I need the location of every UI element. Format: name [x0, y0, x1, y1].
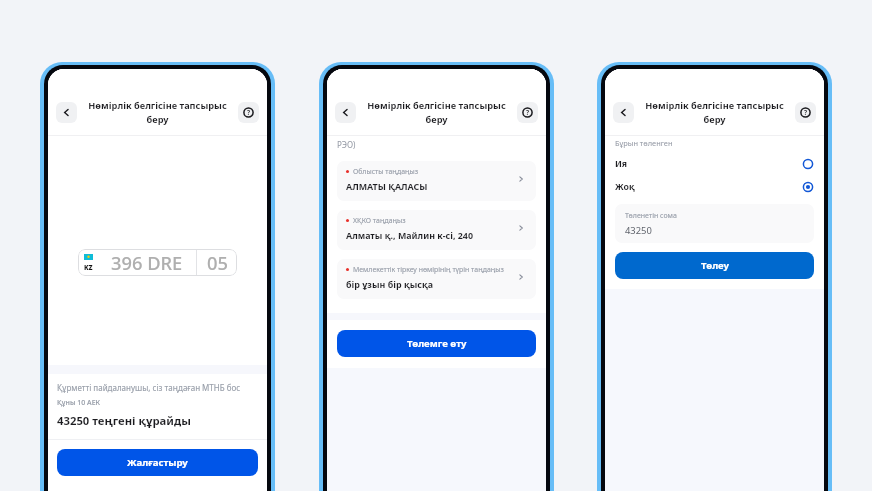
staticText: АЛМАТЫ ҚАЛАСЫ: [346, 180, 428, 192]
button[interactable]: Back: [335, 102, 356, 123]
staticText: Құны 10 АЕК: [57, 398, 101, 408]
staticText: KZ: [84, 263, 93, 272]
button[interactable]: Жоқ: [605, 176, 824, 198]
button[interactable]: Облысты таңдаңыз: [337, 161, 536, 201]
staticText: Құрметті пайдаланушы, сіз таңдаған МТНБ …: [57, 382, 241, 393]
staticText: Ия: [615, 158, 628, 170]
staticText: Төлеу: [701, 259, 729, 272]
staticText: Жоқ: [615, 181, 635, 193]
staticText: ?: [804, 108, 808, 117]
staticText: Нөмірлік белгісіне тапсырыс беру: [359, 99, 514, 126]
staticText: Нөмірлік белгісіне тапсырыс беру: [637, 99, 792, 126]
staticText: Төленетін сома: [625, 211, 677, 221]
staticText: ?: [247, 108, 251, 117]
staticText: Облысты таңдаңыз: [353, 167, 419, 176]
staticText: ХҚКО таңдаңыз: [353, 216, 406, 225]
button[interactable]: Төлемге өту: [337, 330, 536, 357]
button[interactable]: Help: [795, 102, 816, 123]
staticText: Төлемге өту: [407, 337, 467, 350]
staticText: ?: [526, 108, 530, 117]
staticText: 43250: [625, 224, 652, 237]
staticText: 43250 теңгені құрайды: [57, 413, 191, 428]
button[interactable]: Жалғастыру: [57, 449, 258, 476]
staticText: Мемлекеттік тіркеу нөмірінің түрін таңда…: [353, 265, 504, 274]
button[interactable]: Мемлекеттік тіркеу нөмірінің түрін таңда…: [337, 259, 536, 299]
staticText: Алматы қ., Майлин к-сі, 240: [346, 229, 474, 241]
staticText: Нөмірлік белгісіне тапсырыс беру: [80, 99, 235, 126]
button[interactable]: Back: [56, 102, 77, 123]
button[interactable]: Төлеу: [615, 252, 814, 279]
button[interactable]: Help: [517, 102, 538, 123]
button[interactable]: License plate number input 396 DRE 05: [78, 249, 237, 276]
staticText: 396 DRE: [111, 250, 183, 275]
staticText: 05: [207, 250, 228, 275]
button[interactable]: Back: [613, 102, 634, 123]
button[interactable]: Help: [238, 102, 259, 123]
button[interactable]: Ия: [605, 153, 824, 175]
staticText: РЭО): [337, 139, 356, 150]
button[interactable]: ХҚКО таңдаңыз: [337, 210, 536, 250]
staticText: Бұрын төленген: [615, 138, 673, 148]
staticText: Жалғастыру: [127, 456, 188, 469]
button[interactable]: Төленетін сома: [615, 204, 814, 243]
staticText: бір ұзын бір қысқа: [346, 278, 434, 290]
